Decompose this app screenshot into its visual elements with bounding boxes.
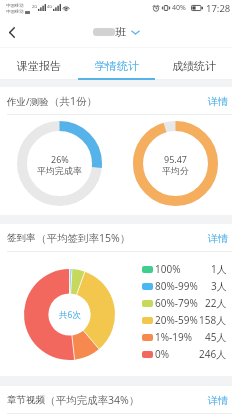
- staticText: 100%: [155, 262, 181, 276]
- staticText: 共6次: [59, 309, 81, 321]
- button[interactable]: 详情: [198, 87, 232, 115]
- button[interactable]: 学情统计: [78, 48, 155, 80]
- staticText: 平均完成率: [37, 165, 82, 176]
- staticText: 3人: [211, 279, 227, 293]
- staticText: （平均签到率15%）: [36, 231, 131, 245]
- staticText: 0%: [155, 347, 170, 361]
- staticText: 平均分: [162, 165, 189, 176]
- button[interactable]: 成绩统计: [155, 48, 232, 80]
- staticText: 95.47: [164, 153, 188, 165]
- staticText: 详情: [208, 232, 228, 245]
- staticText: 中国移动: [6, 9, 24, 15]
- button[interactable]: 课堂报告: [0, 48, 78, 80]
- staticText: 45人: [205, 330, 227, 344]
- staticText: 学情统计: [95, 59, 139, 73]
- staticText: 1%-19%: [155, 330, 192, 344]
- staticText: 作业/测验: [7, 95, 49, 108]
- staticText: 详情: [208, 394, 228, 407]
- staticText: 20%-59%: [155, 313, 198, 327]
- staticText: 4G: [47, 4, 53, 9]
- button[interactable]: 详情: [198, 224, 232, 252]
- staticText: 246人: [199, 347, 227, 361]
- staticText: 40%: [172, 3, 186, 13]
- staticText: 1人: [211, 262, 227, 276]
- staticText: 80%-99%: [155, 279, 198, 293]
- button[interactable]: 详情: [198, 386, 232, 414]
- staticText: 26%: [51, 153, 69, 165]
- staticText: 章节视频: [7, 394, 45, 406]
- staticText: 158人: [199, 313, 227, 327]
- staticText: 17:28: [206, 2, 231, 15]
- staticText: 课堂报告: [17, 59, 61, 73]
- staticText: 成绩统计: [172, 59, 216, 73]
- staticText: （共1份）: [49, 94, 98, 108]
- staticText: 60%-79%: [155, 296, 198, 310]
- staticText: 22人: [205, 296, 227, 310]
- button[interactable]: 班: [89, 20, 144, 44]
- staticText: 班: [115, 25, 126, 39]
- staticText: 签到率: [7, 232, 36, 244]
- button[interactable]: Back: [0, 16, 24, 48]
- staticText: 详情: [208, 95, 228, 108]
- staticText: 2G: [32, 4, 38, 9]
- staticText: 中国移动: [6, 3, 24, 9]
- staticText: （平均完成率34%）: [45, 393, 140, 407]
